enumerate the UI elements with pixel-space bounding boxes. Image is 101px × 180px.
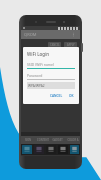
staticText: WPA/WPA2 xyxy=(28,84,45,88)
staticText: APPLY xyxy=(67,43,75,47)
staticText: OK xyxy=(69,94,74,98)
button[interactable]: Password xyxy=(27,73,43,78)
staticText: GADGET xyxy=(52,138,63,142)
button[interactable]: Theme preview xyxy=(34,145,44,154)
staticText: SKIN xyxy=(25,138,31,142)
button[interactable]: Theme preview xyxy=(22,145,32,154)
button[interactable]: APPLY xyxy=(64,42,77,48)
staticText: CANCEL xyxy=(50,43,60,47)
button[interactable]: WPA/WPA2 xyxy=(27,82,75,89)
button[interactable]: GADGET xyxy=(50,136,65,144)
button[interactable]: CANCEL xyxy=(49,93,64,99)
button[interactable]: SSID (WiFi name) xyxy=(27,62,54,67)
button[interactable]: SKIN xyxy=(21,136,35,144)
button[interactable]: CONTENT xyxy=(35,136,50,144)
button[interactable]: CANCEL xyxy=(48,42,61,48)
button[interactable]: COLOR & xyxy=(65,136,80,144)
button[interactable]: OK xyxy=(68,93,75,99)
button[interactable]: Theme preview xyxy=(58,145,68,154)
button[interactable]: Theme preview xyxy=(70,145,79,154)
staticText: QROM xyxy=(24,32,37,37)
button[interactable]: More options xyxy=(70,31,77,38)
staticText: COLOR & xyxy=(67,138,79,142)
staticText: CONTENT xyxy=(37,138,49,142)
button[interactable]: Theme preview xyxy=(46,145,56,154)
staticText: CANCEL xyxy=(50,94,63,98)
staticText: WiFi Login xyxy=(27,51,50,57)
